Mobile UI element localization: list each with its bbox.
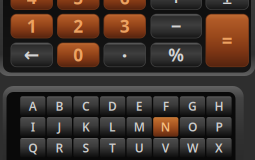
staticText: I bbox=[31, 119, 35, 135]
staticText: U bbox=[135, 140, 144, 156]
button[interactable]: 4 bbox=[10, 0, 53, 10]
staticText: 1 bbox=[27, 15, 37, 38]
button[interactable]: Decimal point bbox=[103, 42, 146, 67]
staticText: W bbox=[187, 140, 198, 156]
button[interactable]: M bbox=[127, 117, 152, 137]
button[interactable]: K bbox=[73, 117, 99, 137]
button[interactable]: Add bbox=[150, 0, 202, 10]
staticText: S bbox=[82, 140, 89, 156]
button[interactable]: Percent bbox=[150, 42, 202, 67]
staticText: N bbox=[161, 119, 171, 135]
staticText: + bbox=[171, 0, 182, 10]
staticText: ± bbox=[222, 0, 232, 9]
button[interactable]: 1 bbox=[10, 14, 53, 38]
button[interactable]: J bbox=[47, 117, 72, 137]
button[interactable]: 0 bbox=[57, 42, 99, 67]
button[interactable]: G bbox=[180, 96, 205, 116]
staticText: F bbox=[163, 98, 169, 114]
button[interactable]: X bbox=[206, 138, 232, 157]
staticText: 3 bbox=[120, 15, 130, 38]
staticText: Q bbox=[28, 140, 37, 156]
staticText: = bbox=[222, 28, 233, 53]
button[interactable]: O bbox=[180, 117, 205, 137]
staticText: P bbox=[215, 119, 222, 135]
button[interactable]: 5 bbox=[57, 0, 99, 10]
staticText: 2 bbox=[73, 15, 83, 38]
staticText: C bbox=[82, 98, 90, 114]
button[interactable]: Toggle sign bbox=[205, 0, 249, 10]
staticText: 6 bbox=[120, 0, 130, 9]
staticText: · bbox=[122, 41, 128, 68]
button[interactable]: R bbox=[47, 138, 72, 157]
staticText: K bbox=[82, 119, 90, 135]
staticText: L bbox=[109, 119, 116, 135]
button[interactable]: N bbox=[153, 117, 178, 137]
button[interactable]: 3 bbox=[103, 14, 146, 38]
button[interactable]: D bbox=[100, 96, 125, 116]
staticText: X bbox=[215, 140, 223, 156]
button[interactable]: L bbox=[100, 117, 125, 137]
button[interactable]: 2 bbox=[57, 14, 99, 38]
staticText: 0 bbox=[73, 43, 83, 66]
staticText: T bbox=[109, 140, 116, 156]
button[interactable]: Q bbox=[20, 138, 45, 157]
button[interactable]: A bbox=[20, 96, 45, 116]
button[interactable]: U bbox=[127, 138, 152, 157]
button[interactable]: Backspace bbox=[10, 42, 53, 67]
staticText: E bbox=[136, 98, 143, 114]
button[interactable]: 6 bbox=[103, 0, 146, 10]
staticText: V bbox=[162, 140, 170, 156]
button[interactable]: Subtract bbox=[150, 14, 202, 38]
button[interactable]: W bbox=[180, 138, 205, 157]
button[interactable]: H bbox=[206, 96, 232, 116]
button[interactable]: T bbox=[100, 138, 125, 157]
button[interactable]: P bbox=[206, 117, 232, 137]
button[interactable]: F bbox=[153, 96, 178, 116]
staticText: M bbox=[134, 119, 145, 135]
staticText: O bbox=[188, 119, 197, 135]
staticText: H bbox=[214, 98, 223, 114]
button[interactable]: Equals bbox=[205, 14, 249, 67]
staticText: A bbox=[29, 98, 37, 114]
staticText: R bbox=[55, 140, 63, 156]
staticText: G bbox=[188, 98, 197, 114]
staticText: 5 bbox=[73, 0, 83, 9]
button[interactable]: V bbox=[153, 138, 178, 157]
button[interactable]: I bbox=[20, 117, 45, 137]
staticText: D bbox=[108, 98, 117, 114]
staticText: % bbox=[168, 43, 184, 66]
staticText: 4 bbox=[27, 0, 37, 9]
staticText: ← bbox=[24, 44, 40, 65]
button[interactable]: B bbox=[47, 96, 72, 116]
staticText: − bbox=[171, 14, 182, 38]
button[interactable]: C bbox=[73, 96, 99, 116]
staticText: J bbox=[57, 119, 61, 135]
button[interactable]: S bbox=[73, 138, 99, 157]
button[interactable]: E bbox=[127, 96, 152, 116]
staticText: B bbox=[55, 98, 63, 114]
